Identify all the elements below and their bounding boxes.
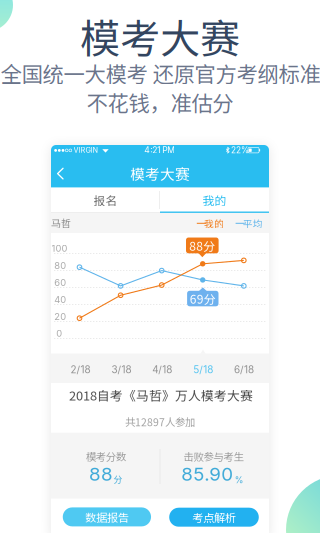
staticText: 马哲 bbox=[51, 216, 71, 230]
staticText: 平均 bbox=[243, 216, 263, 230]
staticText: 模考大赛 bbox=[130, 163, 190, 184]
staticText: 不花钱，准估分 bbox=[86, 87, 233, 117]
staticText: VIRGIN bbox=[73, 146, 98, 155]
staticText: 88 bbox=[89, 463, 113, 485]
staticText: 69分 bbox=[190, 290, 216, 307]
staticText: 4:21 PM bbox=[144, 145, 175, 155]
staticText: 88分 bbox=[189, 237, 215, 254]
staticText: 22% bbox=[231, 145, 249, 155]
button[interactable]: Back bbox=[51, 145, 269, 533]
staticText: 3/18 bbox=[111, 364, 131, 375]
staticText: 100 bbox=[51, 243, 67, 254]
staticText: 模考分数 bbox=[86, 449, 126, 464]
staticText: 报名 bbox=[93, 192, 117, 209]
button[interactable]: 我的 bbox=[160, 187, 269, 213]
staticText: 40 bbox=[54, 294, 66, 305]
staticText: 模考大赛 bbox=[80, 7, 240, 65]
staticText: % bbox=[235, 475, 244, 485]
staticText: 击败参与考生 bbox=[184, 449, 244, 464]
staticText: 6/18 bbox=[234, 364, 254, 375]
staticText: 分 bbox=[113, 473, 122, 485]
staticText: 考点解析 bbox=[192, 509, 236, 525]
staticText: 我的 bbox=[204, 216, 224, 230]
staticText: 80 bbox=[54, 260, 66, 271]
staticText: 全国统一大模考 还原官方考纲标准 bbox=[0, 58, 320, 88]
button[interactable]: 数据报告 bbox=[63, 507, 151, 526]
staticText: 数据报告 bbox=[85, 509, 129, 525]
button[interactable]: 考点解析 bbox=[169, 508, 259, 527]
staticText: 共12897人参加 bbox=[125, 414, 195, 429]
staticText: 2/18 bbox=[70, 364, 90, 375]
staticText: 4/18 bbox=[152, 364, 172, 375]
staticText: 60 bbox=[54, 277, 66, 288]
staticText: 85.90 bbox=[181, 463, 233, 485]
staticText: 5/18 bbox=[193, 364, 213, 375]
staticText: 20 bbox=[54, 311, 66, 322]
staticText: 2018自考《马哲》万人模考大赛 bbox=[69, 386, 253, 404]
button[interactable]: 报名 bbox=[51, 187, 160, 213]
staticText: 0 bbox=[56, 328, 62, 339]
staticText: 我的 bbox=[202, 192, 226, 209]
